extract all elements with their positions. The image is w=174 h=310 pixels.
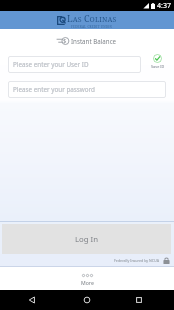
button[interactable]: $ — [0, 33, 174, 48]
staticText: LAS COLINAS — [67, 12, 117, 24]
staticText: Save ID — [151, 64, 165, 69]
button[interactable]: Please enter your password — [8, 81, 166, 98]
staticText: 4:37 — [157, 1, 171, 11]
staticText: Federally Insured by NCUA — [114, 258, 159, 263]
button[interactable]: Save ID — [145, 54, 170, 69]
staticText: FEDERAL CREDIT UNION — [71, 25, 113, 29]
staticText: More — [81, 279, 94, 286]
button[interactable]: Please enter your User ID — [8, 56, 141, 73]
button[interactable]: Recent apps — [119, 290, 159, 310]
button[interactable]: Log In — [2, 224, 171, 254]
staticText: Log In — [75, 234, 99, 245]
staticText: $ — [63, 37, 67, 45]
staticText: Please enter your User ID — [13, 60, 89, 69]
staticText: Please enter your password — [13, 85, 95, 94]
button[interactable]: Home — [67, 290, 107, 310]
button[interactable]: Back — [12, 290, 52, 310]
staticText: Instant Balance — [71, 37, 117, 45]
button[interactable]: More — [0, 267, 174, 290]
